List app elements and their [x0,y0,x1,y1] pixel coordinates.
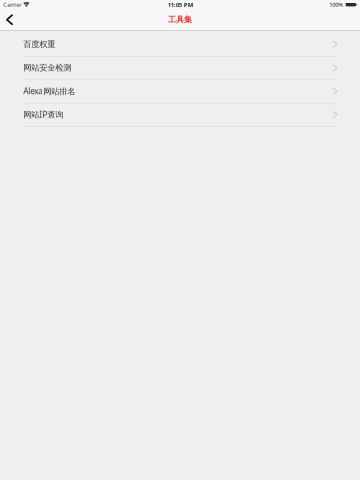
button[interactable]: Back [0,9,19,30]
staticText: 11:05 PM [168,1,194,9]
staticText: Carrier [3,1,21,8]
staticText: 网站安全检测 [23,62,71,73]
staticText: 网站IP查询 [23,109,63,120]
staticText: 100% [329,1,343,8]
button[interactable]: 网站安全检测 [0,57,360,80]
staticText: Alexa网站排名 [23,85,75,97]
staticText: 工具集 [168,15,192,25]
button[interactable]: 网站IP查询 [0,103,360,127]
button[interactable]: Alexa网站排名 [0,80,360,103]
staticText: 百度权重 [23,39,55,49]
button[interactable]: 百度权重 [0,33,360,57]
